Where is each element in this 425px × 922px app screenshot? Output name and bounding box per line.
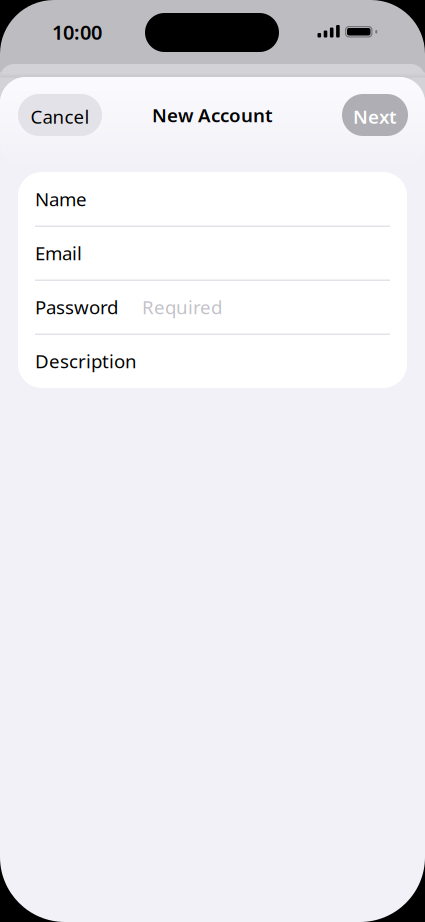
button[interactable]: Description bbox=[18, 334, 407, 388]
staticText: Name bbox=[35, 187, 87, 211]
staticText: Next bbox=[353, 104, 397, 129]
staticText: Password bbox=[35, 295, 118, 319]
staticText: New Account bbox=[152, 103, 273, 127]
staticText: Cancel bbox=[30, 104, 89, 129]
staticText: 10:00 bbox=[52, 19, 102, 45]
staticText: Required bbox=[142, 295, 222, 319]
button[interactable]: Cancel bbox=[18, 94, 102, 136]
button[interactable]: Password bbox=[18, 280, 407, 334]
staticText: Description bbox=[35, 349, 137, 373]
button[interactable]: Next bbox=[342, 94, 408, 136]
button[interactable]: Email bbox=[18, 226, 407, 280]
staticText: Email bbox=[35, 241, 82, 265]
button[interactable]: Name bbox=[18, 172, 407, 226]
